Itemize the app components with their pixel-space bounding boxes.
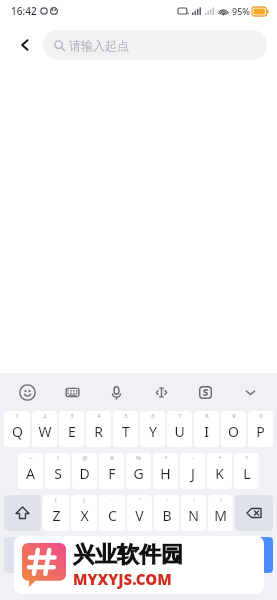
button[interactable]: - xyxy=(180,453,205,489)
staticText: K xyxy=(215,464,224,483)
button[interactable]: / xyxy=(208,495,233,531)
staticText: ; xyxy=(193,496,195,504)
staticText: L xyxy=(243,464,251,483)
staticText: 0 xyxy=(259,412,263,420)
button[interactable]: Edit cursor xyxy=(148,379,174,405)
staticText: - xyxy=(192,454,194,462)
staticText: P xyxy=(256,422,265,441)
button[interactable]: # xyxy=(99,453,124,489)
staticText: Q xyxy=(12,422,23,441)
button[interactable]: 中文 xyxy=(77,537,181,573)
staticText: H xyxy=(160,464,171,483)
button[interactable]: Emoji xyxy=(14,379,40,405)
staticText: - xyxy=(111,496,113,504)
button[interactable]: Shift xyxy=(4,495,41,531)
staticText: 请输入起点 xyxy=(69,38,129,53)
button[interactable]: 符 xyxy=(4,537,38,573)
staticText: ! xyxy=(57,454,59,462)
staticText: 符 xyxy=(16,548,27,562)
button[interactable]: 请输入起点 xyxy=(43,30,267,60)
staticText: 95% xyxy=(232,5,250,17)
staticText: S xyxy=(54,464,62,483)
button[interactable]: 7 xyxy=(167,411,192,447)
button[interactable]: 9 xyxy=(221,411,246,447)
staticText: # xyxy=(110,454,114,462)
staticText: 兴业软件园 xyxy=(73,541,183,569)
button[interactable]: 5 xyxy=(113,411,138,447)
button[interactable]: Keyboard layout xyxy=(59,379,85,405)
staticText: Y xyxy=(149,422,157,441)
staticText: R xyxy=(94,422,103,441)
staticText: @ xyxy=(82,454,88,462)
staticText: ， xyxy=(52,548,63,562)
staticText: N xyxy=(188,506,199,525)
staticText: U xyxy=(174,422,185,441)
staticText: 6 xyxy=(151,412,155,420)
staticText: MYXYJS.COM xyxy=(73,569,172,589)
staticText: 5 xyxy=(124,412,128,420)
staticText: " xyxy=(138,496,141,504)
button[interactable]: Hide keyboard xyxy=(237,379,263,405)
staticText: 8 xyxy=(205,412,209,420)
button[interactable]: ) xyxy=(71,495,97,531)
button[interactable]: 2 xyxy=(32,411,57,447)
staticText: ~ xyxy=(29,454,33,462)
staticText: E xyxy=(68,422,76,441)
staticText: : xyxy=(166,496,168,504)
button[interactable]: ; xyxy=(181,495,206,531)
button[interactable]: ( xyxy=(43,495,69,531)
staticText: 2 xyxy=(43,412,47,420)
button[interactable]: + xyxy=(207,453,232,489)
button[interactable]: : xyxy=(154,495,179,531)
button[interactable]: Backspace xyxy=(235,495,273,531)
staticText: 1 xyxy=(15,412,19,420)
button[interactable]: Sogou settings xyxy=(192,379,218,405)
button[interactable]: % xyxy=(126,453,151,489)
staticText: 16:42 xyxy=(11,4,37,18)
button[interactable]: Voice input xyxy=(103,379,129,405)
button[interactable]: ~ xyxy=(18,453,43,489)
staticText: 9 xyxy=(232,412,236,420)
staticText: W xyxy=(38,422,52,441)
staticText: 4 xyxy=(97,412,101,420)
button[interactable]: 3 xyxy=(59,411,84,447)
button[interactable]: " xyxy=(127,495,152,531)
staticText: ) xyxy=(83,496,85,504)
staticText: % xyxy=(136,454,141,462)
staticText: V xyxy=(135,506,144,525)
staticText: 7 xyxy=(178,412,182,420)
staticText: G xyxy=(133,464,144,483)
staticText: ( xyxy=(55,496,57,504)
button[interactable]: 搜索 xyxy=(220,537,273,573)
staticText: A xyxy=(26,464,35,483)
button[interactable]: Back xyxy=(10,30,40,60)
staticText: T xyxy=(122,422,130,441)
staticText: M xyxy=(214,506,227,525)
staticText: O xyxy=(228,422,239,441)
staticText: I xyxy=(204,422,209,441)
button[interactable]: ! xyxy=(45,453,70,489)
button[interactable]: 1 xyxy=(4,411,30,447)
staticText: C xyxy=(108,506,117,525)
staticText: X xyxy=(80,506,89,525)
staticText: 中文 xyxy=(118,548,140,562)
button[interactable]: - xyxy=(99,495,125,531)
staticText: D xyxy=(79,464,90,483)
button[interactable]: 4 xyxy=(86,411,111,447)
button[interactable]: ? xyxy=(234,453,259,489)
button[interactable]: @ xyxy=(72,453,97,489)
button[interactable]: * xyxy=(153,453,178,489)
staticText: F xyxy=(108,464,116,483)
button[interactable]: ， xyxy=(40,537,75,573)
staticText: * xyxy=(164,454,168,462)
staticText: / xyxy=(219,496,222,504)
button[interactable]: 0 xyxy=(248,411,273,447)
button[interactable]: 6 xyxy=(140,411,165,447)
button[interactable]: 8 xyxy=(194,411,219,447)
staticText: 3 xyxy=(70,412,74,420)
staticText: Z xyxy=(52,506,61,525)
staticText: + xyxy=(218,454,222,462)
